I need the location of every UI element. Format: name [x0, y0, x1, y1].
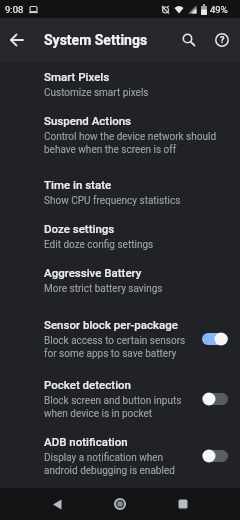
staticText: Customize smart pixels [44, 87, 149, 99]
staticText: ? [220, 35, 225, 46]
staticText: 9:08 [5, 4, 24, 15]
staticText: Aggressive Battery [44, 266, 142, 279]
button[interactable]: Sensor block per-package [0, 310, 240, 370]
button[interactable]: Suspend Actions [0, 106, 240, 163]
staticText: ADB notification [44, 435, 128, 448]
button[interactable] [163, 488, 203, 520]
button[interactable]: ADB notification [0, 427, 240, 484]
staticText: Control how the device network should be… [44, 131, 217, 156]
staticText: Display a notification when android debu… [44, 452, 175, 477]
staticText: Smart Pixels [44, 70, 110, 83]
staticText: Sensor block per-package [44, 318, 178, 331]
staticText: 49% [210, 4, 228, 15]
staticText: System Settings [44, 32, 148, 48]
button[interactable] [174, 25, 204, 55]
staticText: More strict battery savings [44, 283, 163, 295]
button[interactable]: Aggressive Battery [0, 258, 240, 302]
button[interactable]: Time in state [0, 170, 240, 214]
staticText: Pocket detection [44, 378, 132, 391]
button[interactable] [37, 488, 77, 520]
staticText: Doze settings [44, 222, 115, 235]
staticText: Block screen and button inputs when devi… [44, 395, 182, 420]
button[interactable]: ? [207, 25, 237, 55]
button[interactable] [100, 488, 140, 520]
staticText: Suspend Actions [44, 114, 132, 127]
staticText: Time in state [44, 178, 112, 191]
staticText: Show CPU frequency statistics [44, 195, 181, 207]
staticText: Edit doze config settings [44, 239, 154, 251]
button[interactable] [0, 23, 34, 57]
button[interactable]: Doze settings [0, 214, 240, 258]
button[interactable]: Smart Pixels [0, 62, 240, 106]
button[interactable]: Pocket detection [0, 370, 240, 427]
staticText: Block access to certain sensors for some… [44, 335, 186, 360]
